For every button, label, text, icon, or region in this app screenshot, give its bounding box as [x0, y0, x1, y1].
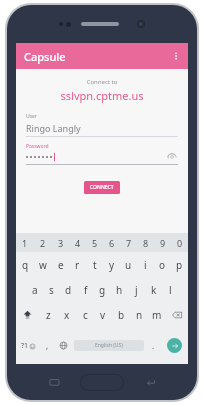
- button[interactable]: z: [39, 302, 58, 327]
- staticText: c: [83, 308, 88, 322]
- button[interactable]: 0: [171, 233, 188, 252]
- button[interactable]: Home: [80, 374, 124, 391]
- button[interactable]: t: [86, 252, 103, 277]
- button[interactable]: w: [34, 252, 52, 277]
- staticText: ,: [46, 340, 49, 351]
- staticText: m: [152, 308, 162, 322]
- button[interactable]: Password: [26, 143, 178, 165]
- button[interactable]: u: [120, 252, 137, 277]
- staticText: 5: [92, 237, 98, 249]
- button[interactable]: CONNECT: [84, 181, 120, 194]
- button[interactable]: Show password: [166, 151, 178, 163]
- button[interactable]: o: [154, 252, 171, 277]
- button[interactable]: User: [26, 113, 178, 137]
- staticText: User: [26, 113, 37, 120]
- staticText: p: [176, 258, 183, 272]
- button[interactable]: English (US): [74, 340, 144, 351]
- button[interactable]: 7: [120, 233, 137, 252]
- staticText: ?1: [21, 341, 29, 351]
- button[interactable]: k: [145, 277, 162, 302]
- button[interactable]: f: [77, 277, 94, 302]
- staticText: 0: [177, 237, 183, 249]
- button[interactable]: a: [26, 277, 43, 302]
- staticText: CONNECT: [90, 184, 114, 191]
- button[interactable]: 1: [16, 233, 34, 252]
- button[interactable]: Enter: [167, 338, 182, 353]
- staticText: Ringo Langly: [26, 122, 81, 134]
- staticText: k: [151, 283, 157, 297]
- staticText: z: [46, 308, 51, 322]
- button[interactable]: 2: [34, 233, 52, 252]
- button[interactable]: 4: [69, 233, 86, 252]
- staticText: 8: [143, 237, 149, 249]
- staticText: i: [144, 258, 147, 272]
- staticText: d: [65, 283, 72, 297]
- button[interactable]: n: [130, 302, 148, 327]
- staticText: r: [75, 258, 80, 272]
- button[interactable]: ,: [40, 327, 54, 364]
- button[interactable]: 3: [52, 233, 69, 252]
- button[interactable]: ?1: [16, 327, 40, 364]
- staticText: j: [135, 283, 138, 297]
- staticText: u: [125, 258, 132, 272]
- staticText: Capsule: [24, 49, 66, 64]
- staticText: English (US): [95, 342, 123, 349]
- button[interactable]: 6: [103, 233, 120, 252]
- staticText: l: [169, 283, 172, 297]
- staticText: 2: [40, 237, 46, 249]
- button[interactable]: d: [60, 277, 77, 302]
- button[interactable]: i: [137, 252, 154, 277]
- button[interactable]: v: [94, 302, 112, 327]
- staticText: 7: [126, 237, 132, 249]
- button[interactable]: m: [148, 302, 166, 327]
- button[interactable]: 8: [137, 233, 154, 252]
- staticText: sslvpn.cptme.us: [26, 88, 178, 103]
- button[interactable]: p: [171, 252, 188, 277]
- staticText: h: [116, 283, 123, 297]
- staticText: q: [22, 258, 29, 272]
- button[interactable]: r: [69, 252, 86, 277]
- staticText: b: [118, 308, 125, 322]
- button[interactable]: Back: [124, 372, 176, 392]
- staticText: 6: [109, 237, 115, 249]
- staticText: 9: [160, 237, 166, 249]
- staticText: e: [58, 258, 64, 272]
- button[interactable]: s: [43, 277, 60, 302]
- staticText: s: [49, 283, 54, 297]
- staticText: f: [84, 283, 88, 297]
- staticText: a: [32, 283, 38, 297]
- button[interactable]: x: [58, 302, 76, 327]
- staticText: n: [136, 308, 143, 322]
- button[interactable]: Shift: [16, 302, 39, 327]
- staticText: 3: [58, 237, 64, 249]
- staticText: 1: [22, 237, 28, 249]
- button[interactable]: Recents: [28, 372, 80, 392]
- button[interactable]: Backspace: [166, 302, 188, 327]
- button[interactable]: j: [128, 277, 145, 302]
- staticText: Connect to: [26, 78, 178, 86]
- button[interactable]: b: [112, 302, 130, 327]
- button[interactable]: 5: [86, 233, 103, 252]
- staticText: o: [159, 258, 166, 272]
- button[interactable]: q: [16, 252, 34, 277]
- staticText: x: [64, 308, 70, 322]
- staticText: 4: [75, 237, 81, 249]
- staticText: v: [100, 308, 106, 322]
- staticText: Password: [26, 143, 49, 150]
- button[interactable]: g: [94, 277, 111, 302]
- button[interactable]: 9: [154, 233, 171, 252]
- staticText: g: [99, 283, 106, 297]
- staticText: .: [152, 340, 155, 351]
- button[interactable]: y: [103, 252, 120, 277]
- button[interactable]: c: [76, 302, 94, 327]
- staticText: t: [93, 258, 97, 272]
- button[interactable]: l: [162, 277, 179, 302]
- button[interactable]: h: [111, 277, 128, 302]
- staticText: y: [109, 258, 115, 272]
- staticText: w: [39, 258, 47, 272]
- button[interactable]: More options: [164, 44, 188, 68]
- button[interactable]: e: [52, 252, 69, 277]
- button[interactable]: .: [146, 327, 160, 364]
- button[interactable]: Change keyboard language: [54, 327, 72, 364]
